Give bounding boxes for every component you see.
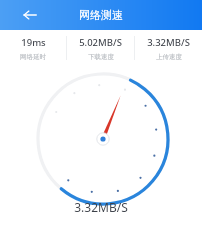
button[interactable]: 5.02MB/S <box>67 36 134 61</box>
staticText: 3.32MB/S <box>74 199 128 215</box>
staticText: 下载速度 <box>88 53 114 61</box>
staticText: 3.32MB/S <box>147 36 190 49</box>
staticText: 5.02MB/S <box>79 36 122 49</box>
staticText: 网络测速 <box>79 8 123 22</box>
button[interactable]: 19ms <box>0 36 66 61</box>
staticText: 上传速度 <box>156 53 182 61</box>
staticText: 网络延时 <box>20 53 46 61</box>
staticText: 19ms <box>21 36 46 49</box>
button[interactable]: Back <box>18 3 42 27</box>
button[interactable]: 3.32MB/S <box>135 36 202 61</box>
